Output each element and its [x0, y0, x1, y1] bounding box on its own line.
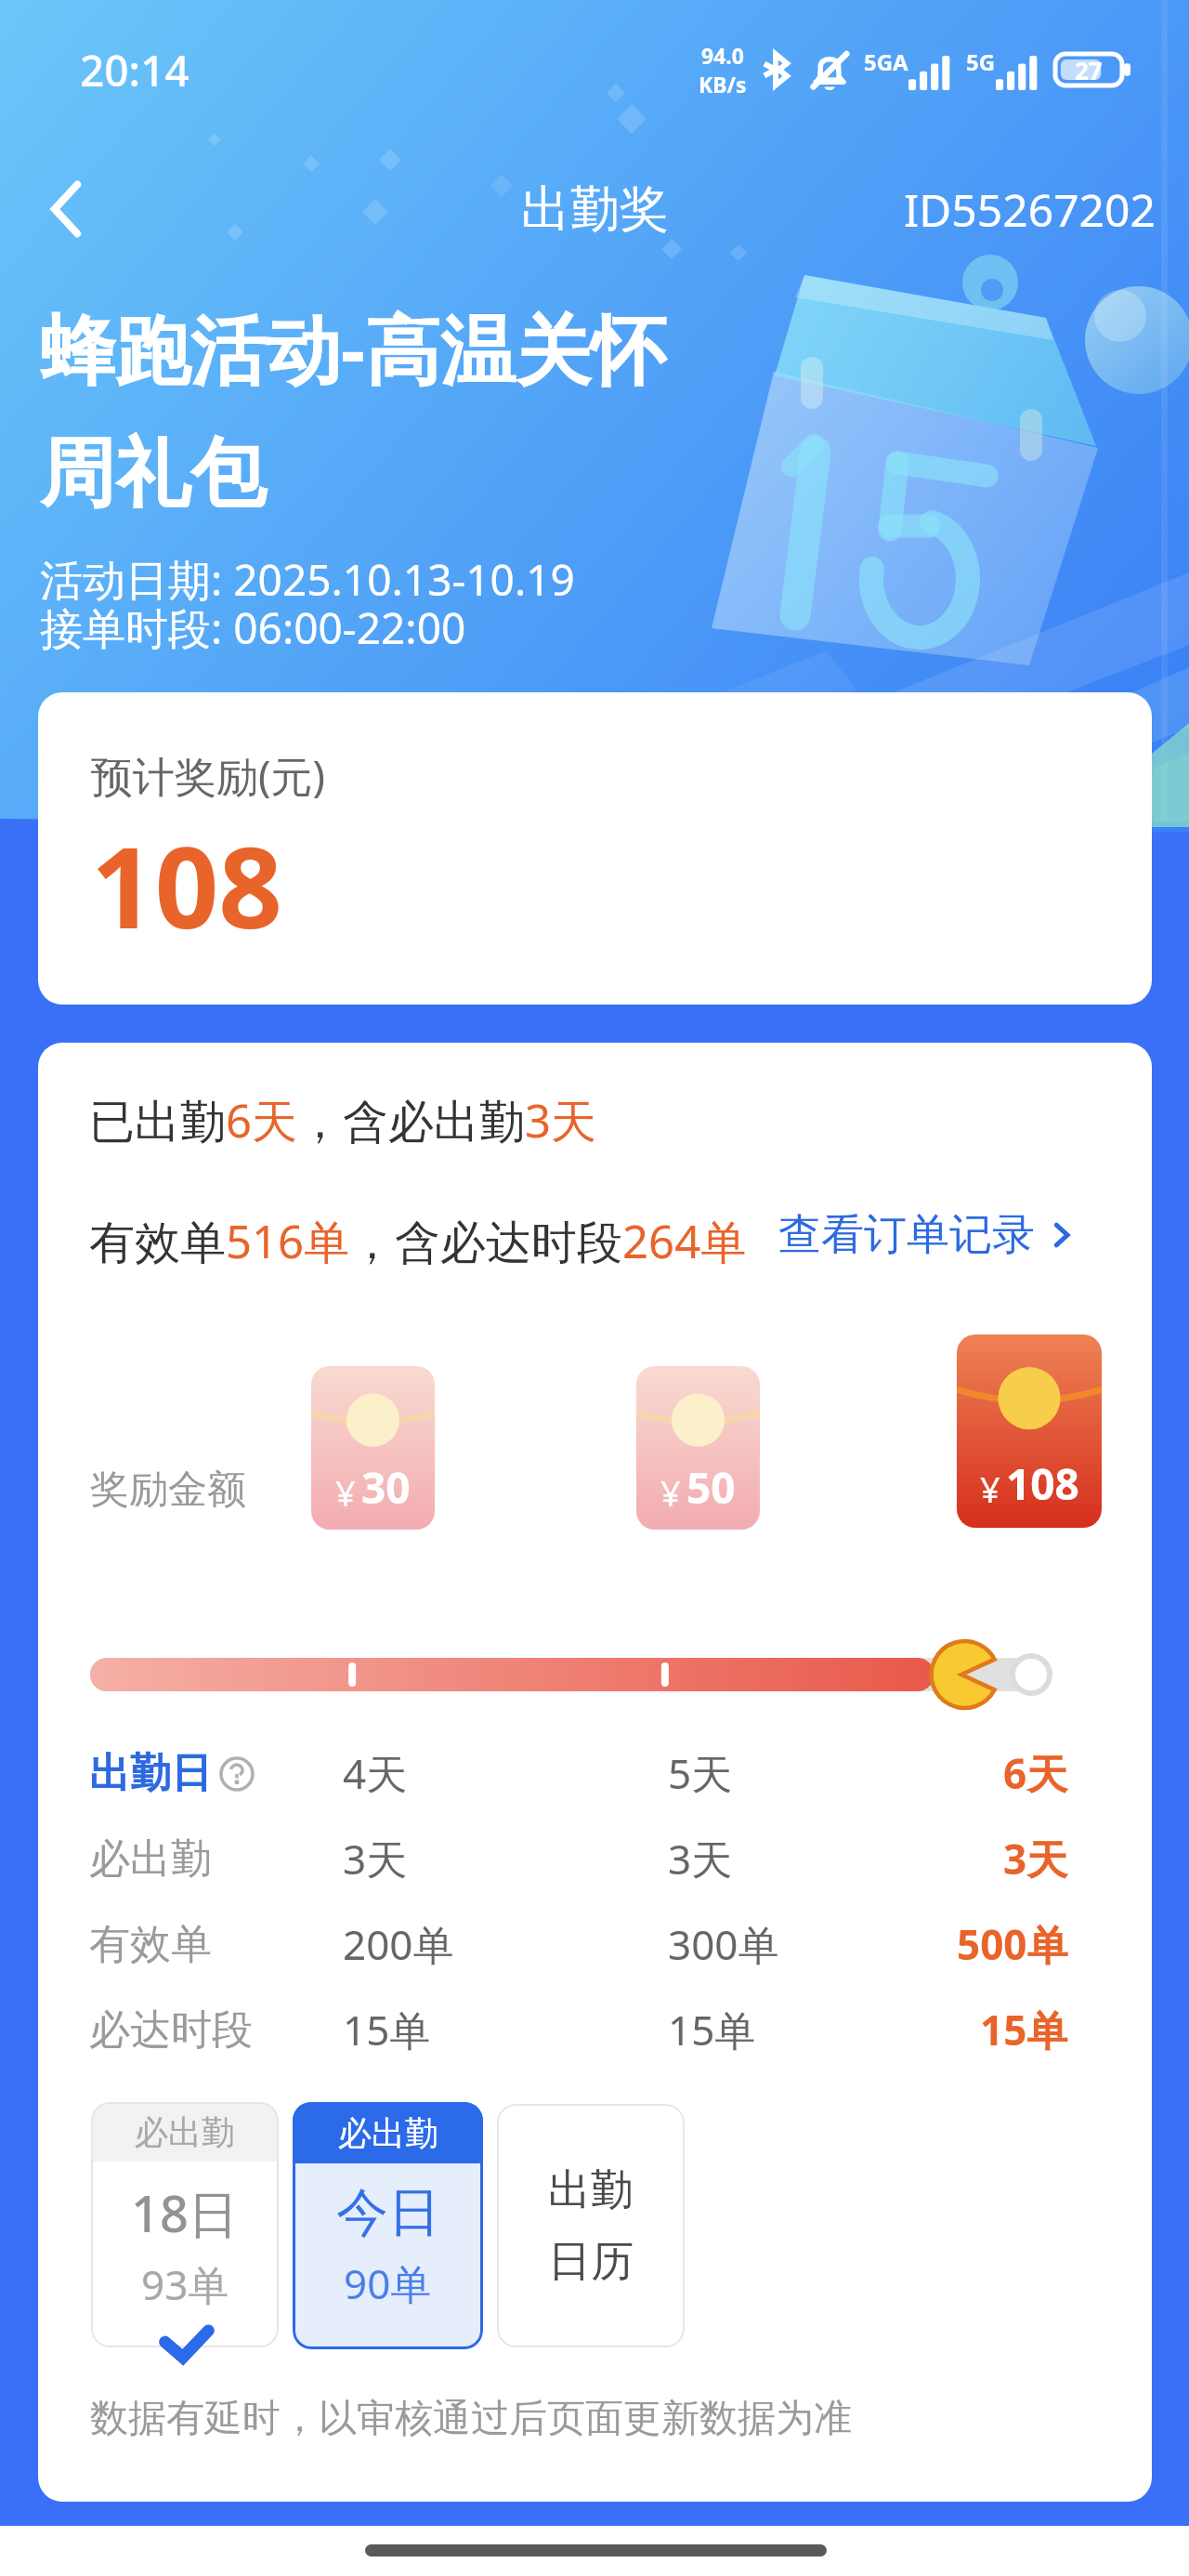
- staticText: 300单: [668, 1916, 779, 1972]
- staticText: KB/s: [699, 70, 747, 99]
- staticText: 蜂跑活动-高温关怀: [40, 296, 666, 400]
- staticText: 必达时段: [89, 2004, 253, 2056]
- staticText: 94.0: [701, 41, 744, 70]
- staticText: 有效单: [89, 1919, 212, 1970]
- staticText: 108: [91, 809, 282, 961]
- staticText: 15单: [668, 2002, 756, 2057]
- staticText: 出勤奖: [521, 178, 669, 241]
- staticText: 4天: [343, 1745, 408, 1801]
- staticText: 200单: [343, 1916, 454, 1972]
- staticText: 出勤日: [89, 1748, 212, 1799]
- staticText: 93单: [141, 2256, 229, 2312]
- staticText: 3天: [668, 1831, 733, 1886]
- staticText: 有效单516单，含必达时段264单: [89, 1210, 747, 1272]
- staticText: 奖励金额: [90, 1465, 246, 1515]
- button[interactable]: 必出勤: [91, 2102, 279, 2347]
- staticText: 30: [361, 1458, 411, 1517]
- staticText: 18日: [131, 2178, 239, 2247]
- staticText: 27: [1075, 54, 1103, 86]
- staticText: 查看订单记录: [778, 1208, 1035, 1262]
- staticText: 90单: [344, 2255, 432, 2311]
- button[interactable]: 查看订单记录: [778, 1208, 1078, 1262]
- staticText: 5天: [668, 1745, 733, 1801]
- staticText: 6天: [1003, 1745, 1068, 1801]
- staticText: 已出勤6天，含必出勤3天: [89, 1089, 597, 1151]
- staticText: 15单: [980, 2002, 1068, 2057]
- staticText: 接单时段: 06:00-22:00: [40, 598, 466, 657]
- staticText: 3天: [1003, 1831, 1068, 1886]
- staticText: 3天: [343, 1831, 408, 1886]
- button[interactable]: 出勤 日历: [497, 2104, 685, 2347]
- button[interactable]: Back: [28, 167, 111, 251]
- staticText: 今日: [336, 2180, 440, 2246]
- staticText: ¥: [980, 1465, 1000, 1513]
- staticText: 出勤 日历: [548, 2163, 634, 2288]
- staticText: 必出勤: [89, 1833, 212, 1885]
- staticText: 必出勤: [338, 2112, 438, 2154]
- staticText: 活动日期: 2025.10.13-10.19: [40, 550, 575, 609]
- staticText: 预计奖励(元): [91, 747, 326, 804]
- staticText: ¥: [335, 1468, 356, 1517]
- staticText: 周礼包: [40, 427, 266, 521]
- staticText: 15单: [343, 2002, 431, 2057]
- staticText: 108: [1006, 1454, 1079, 1513]
- button[interactable]: 必出勤: [293, 2102, 483, 2349]
- staticText: ID55267202: [904, 179, 1156, 240]
- staticText: 20:14: [80, 41, 189, 99]
- staticText: ¥: [660, 1468, 681, 1517]
- staticText: 5G: [966, 46, 996, 77]
- staticText: 50: [686, 1458, 736, 1517]
- staticText: 5GA: [864, 46, 908, 77]
- staticText: 500单: [957, 1916, 1068, 1972]
- staticText: 必出勤: [135, 2111, 235, 2153]
- staticText: 数据有延时，以审核通过后页面更新数据为准: [90, 2395, 852, 2443]
